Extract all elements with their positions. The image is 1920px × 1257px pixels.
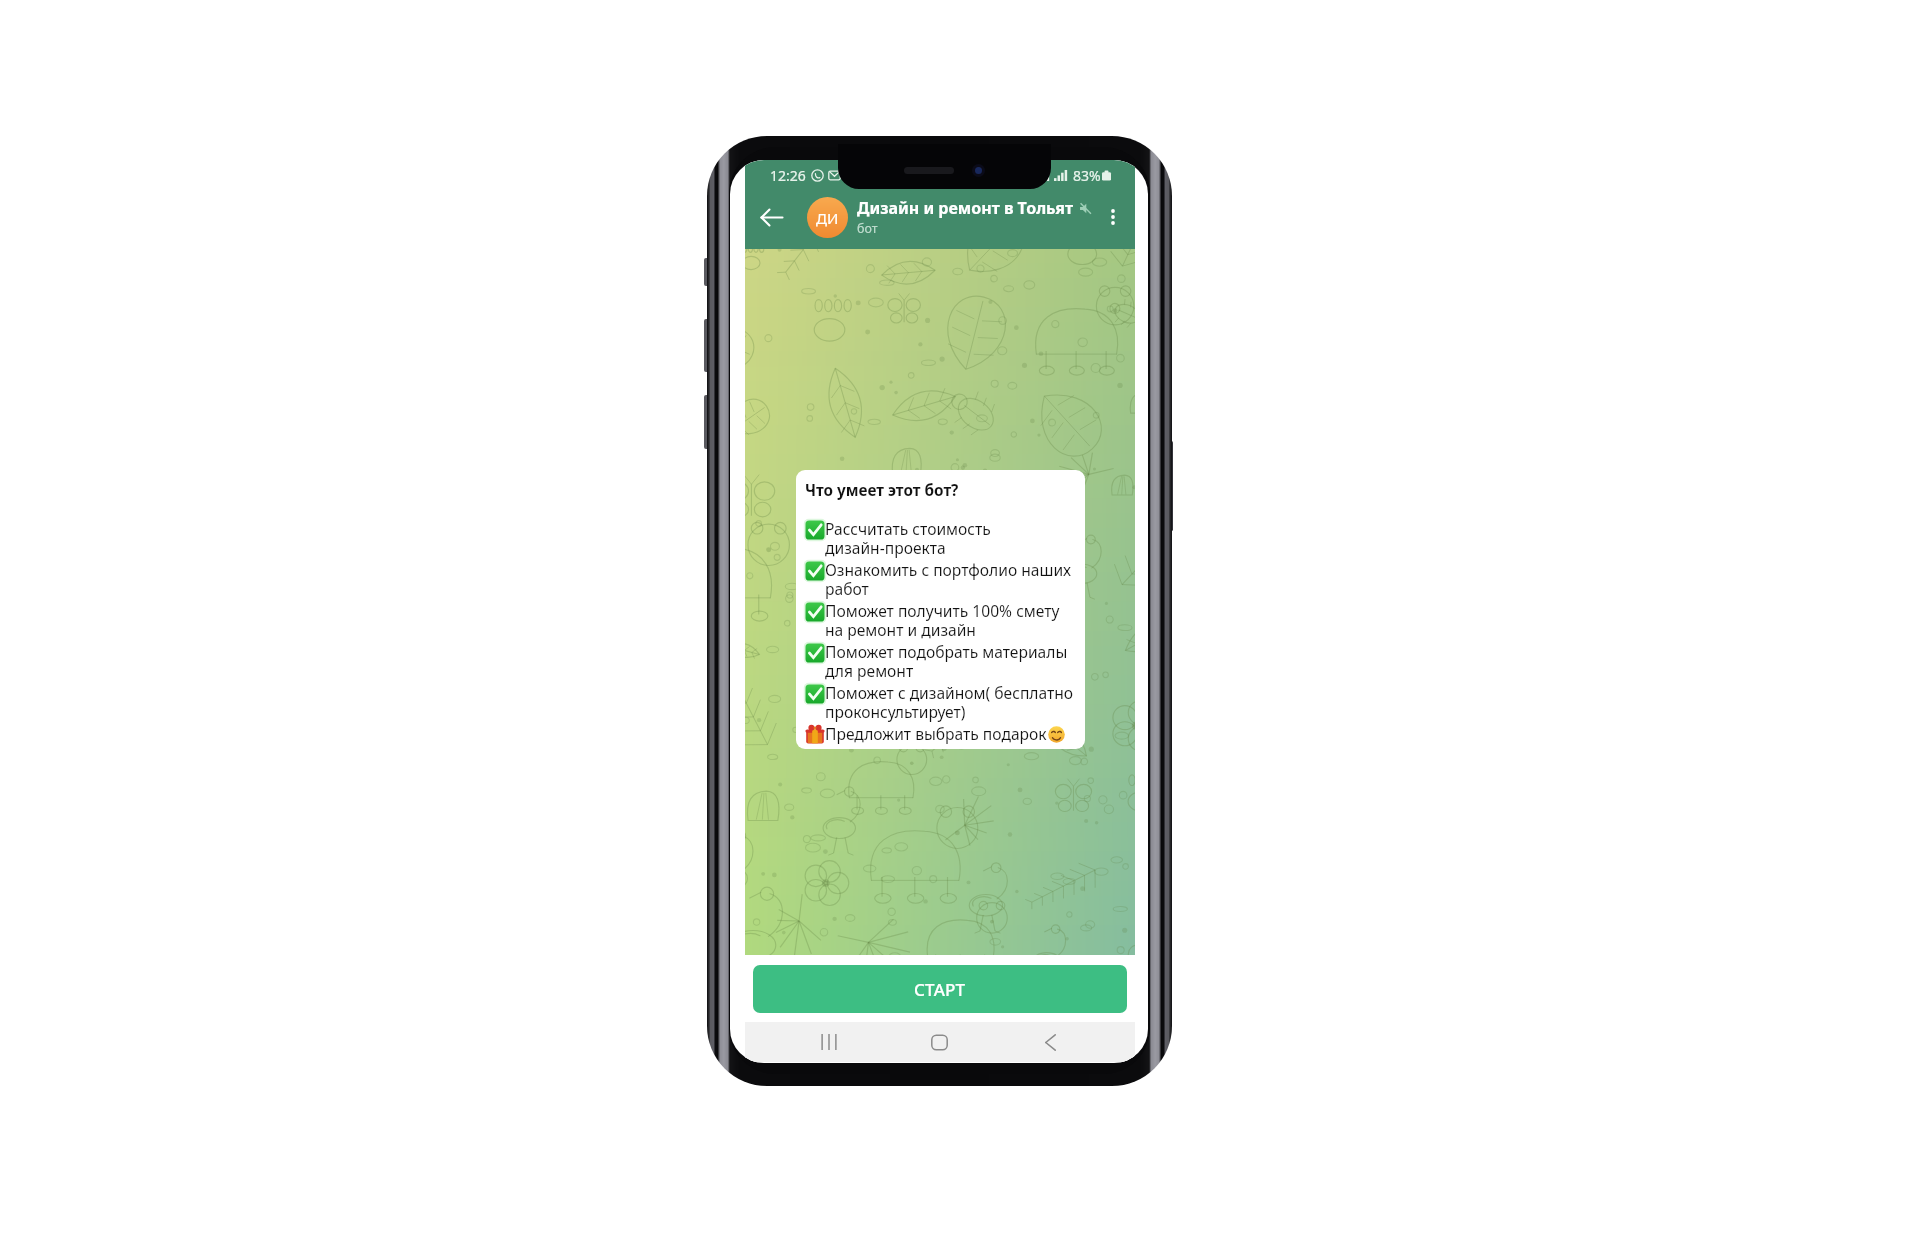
staticText: 12:26 — [770, 166, 806, 185]
staticText: 83% — [1073, 166, 1101, 185]
button[interactable]: СТАРТ — [753, 965, 1127, 1013]
staticText: Поможет получить 100% смету на ремонт и … — [825, 600, 1060, 641]
staticText: Предложит выбрать подарок — [825, 723, 1047, 744]
staticText: Ознакомить с портфолио наших работ — [825, 559, 1072, 600]
staticText: СТАРТ — [914, 978, 966, 1001]
button[interactable]: Recent apps — [801, 1022, 857, 1062]
button[interactable]: Back — [1022, 1022, 1078, 1062]
staticText: Поможет с дизайном( бесплатно проконсуль… — [825, 682, 1074, 723]
button[interactable]: Home — [911, 1022, 967, 1062]
staticText: Поможет подобрать материалы для ремонт — [825, 641, 1068, 682]
button[interactable]: Back — [749, 190, 793, 244]
staticText: бот — [857, 220, 878, 237]
staticText: Дизайн и ремонт в Тольят — [857, 197, 1074, 219]
staticText: Рассчитать стоимость дизайн-проекта — [825, 518, 991, 559]
button[interactable]: More options — [1091, 190, 1135, 244]
staticText: ДИ — [816, 208, 839, 228]
staticText: Что умеет этот бот? — [805, 480, 959, 501]
button[interactable]: Chat avatar — [807, 197, 848, 238]
button[interactable]: Дизайн и ремонт в Тольят — [857, 190, 1117, 244]
